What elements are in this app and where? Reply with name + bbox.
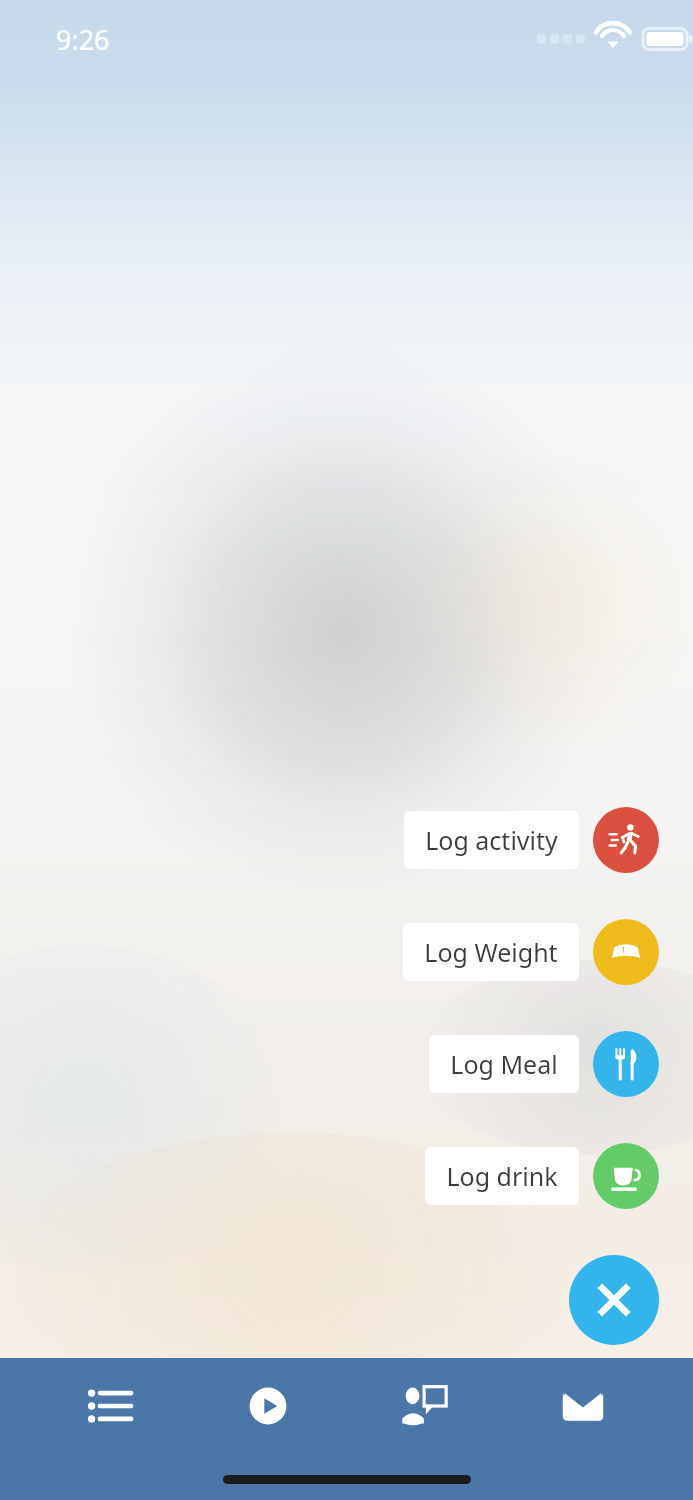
staticText: Log Meal [450, 1047, 558, 1081]
other: Log drink [593, 1143, 659, 1209]
button[interactable]: Log drink [425, 1143, 659, 1209]
button[interactable]: Close menu [569, 1255, 659, 1345]
other: Log Meal [593, 1031, 659, 1097]
staticText: Log drink [446, 1159, 558, 1193]
button[interactable]: Messages [535, 1358, 631, 1454]
other: Log Weight [593, 919, 659, 985]
staticText: Log activity [425, 823, 558, 857]
other: Log activity [593, 807, 659, 873]
button[interactable]: Log Weight [403, 919, 659, 985]
staticText: Log Weight [424, 935, 558, 969]
button[interactable]: Feed [62, 1358, 158, 1454]
button[interactable]: Log Meal [429, 1031, 659, 1097]
staticText: 9:26 [56, 21, 110, 58]
button[interactable]: Play [220, 1358, 316, 1454]
button[interactable]: Coach [377, 1358, 473, 1454]
button[interactable]: Log activity [404, 807, 659, 873]
